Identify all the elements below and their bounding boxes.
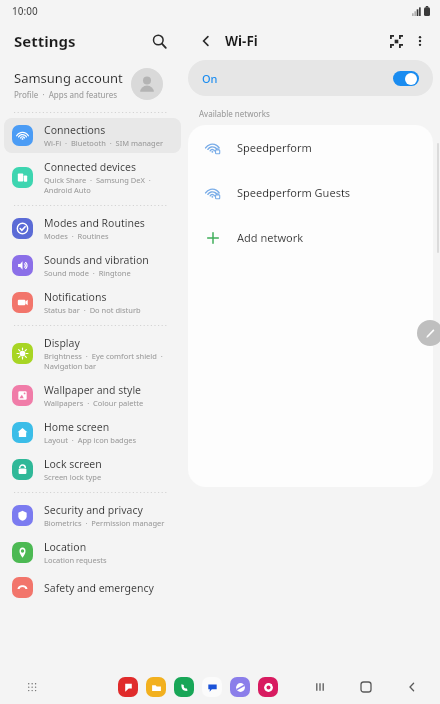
staticText: Modes · Routines bbox=[44, 231, 109, 241]
staticText: Notifications bbox=[44, 290, 107, 304]
staticText: Safety and emergency bbox=[44, 581, 154, 595]
staticText: Speedperform bbox=[237, 140, 312, 155]
button[interactable]: Scan QR code bbox=[384, 29, 408, 53]
button[interactable]: Samsung account bbox=[0, 60, 185, 108]
button[interactable]: App bbox=[118, 677, 138, 697]
button[interactable]: Speedperform bbox=[188, 125, 433, 170]
button[interactable]: Back bbox=[402, 677, 422, 697]
staticText: Layout · App icon badges bbox=[44, 435, 137, 445]
button[interactable]: Security and privacy bbox=[4, 498, 181, 533]
staticText: Connections bbox=[44, 123, 106, 137]
button[interactable]: Search bbox=[147, 29, 171, 53]
button[interactable]: Display bbox=[4, 331, 181, 376]
staticText: Wallpaper and style bbox=[44, 383, 142, 397]
staticText: 10:00 bbox=[12, 4, 38, 18]
button[interactable]: On bbox=[188, 60, 433, 96]
button[interactable]: App bbox=[258, 677, 278, 697]
button[interactable]: App bbox=[146, 677, 166, 697]
button[interactable]: Add network bbox=[188, 215, 433, 260]
staticText: Status bar · Do not disturb bbox=[44, 305, 141, 315]
staticText: Brightness · Eye comfort shield · Naviga… bbox=[44, 351, 163, 371]
staticText: Screen lock type bbox=[44, 472, 102, 482]
staticText: Available networks bbox=[199, 108, 270, 119]
button[interactable]: Recents bbox=[310, 677, 330, 697]
staticText: Samsung account bbox=[14, 69, 123, 87]
button[interactable]: Safety and emergency bbox=[4, 572, 181, 603]
button[interactable]: Speedperform Guests bbox=[188, 170, 433, 215]
button[interactable]: Lock screen bbox=[4, 452, 181, 487]
staticText: Modes and Routines bbox=[44, 216, 145, 230]
button[interactable]: App bbox=[230, 677, 250, 697]
button[interactable]: Wallpaper and style bbox=[4, 378, 181, 413]
button[interactable]: All apps bbox=[22, 677, 42, 697]
button[interactable]: Connections bbox=[4, 118, 181, 153]
staticText: Sounds and vibration bbox=[44, 253, 149, 267]
button[interactable]: Location bbox=[4, 535, 181, 570]
staticText: Home screen bbox=[44, 420, 110, 434]
button[interactable]: Modes and Routines bbox=[4, 211, 181, 246]
button[interactable]: Sounds and vibration bbox=[4, 248, 181, 283]
staticText: Security and privacy bbox=[44, 503, 143, 517]
staticText: Profile · Apps and features bbox=[14, 89, 118, 100]
staticText: Location requests bbox=[44, 555, 107, 565]
staticText: Sound mode · Ringtone bbox=[44, 268, 131, 278]
staticText: Biometrics · Permission manager bbox=[44, 518, 165, 528]
staticText: Quick Share · Samsung DeX · Android Auto bbox=[44, 175, 151, 195]
button[interactable]: More options bbox=[408, 29, 432, 53]
staticText: Add network bbox=[237, 230, 304, 245]
staticText: Speedperform Guests bbox=[237, 185, 351, 200]
staticText: Connected devices bbox=[44, 160, 137, 174]
button[interactable]: Notifications bbox=[4, 285, 181, 320]
button[interactable]: App bbox=[174, 677, 194, 697]
button[interactable]: Edit bbox=[417, 320, 440, 346]
staticText: Wi-Fi · Bluetooth · SIM manager bbox=[44, 138, 163, 148]
staticText: Wi-Fi bbox=[225, 32, 258, 50]
staticText: Display bbox=[44, 336, 80, 350]
staticText: Location bbox=[44, 540, 87, 554]
staticText: On bbox=[202, 71, 393, 86]
button[interactable]: App bbox=[202, 677, 222, 697]
staticText: Lock screen bbox=[44, 457, 102, 471]
button[interactable]: Home screen bbox=[4, 415, 181, 450]
staticText: Settings bbox=[14, 31, 76, 51]
button[interactable]: Back bbox=[193, 28, 219, 54]
staticText: Wallpapers · Colour palette bbox=[44, 398, 144, 408]
button[interactable]: Connected devices bbox=[4, 155, 181, 200]
button[interactable]: Home bbox=[356, 677, 376, 697]
